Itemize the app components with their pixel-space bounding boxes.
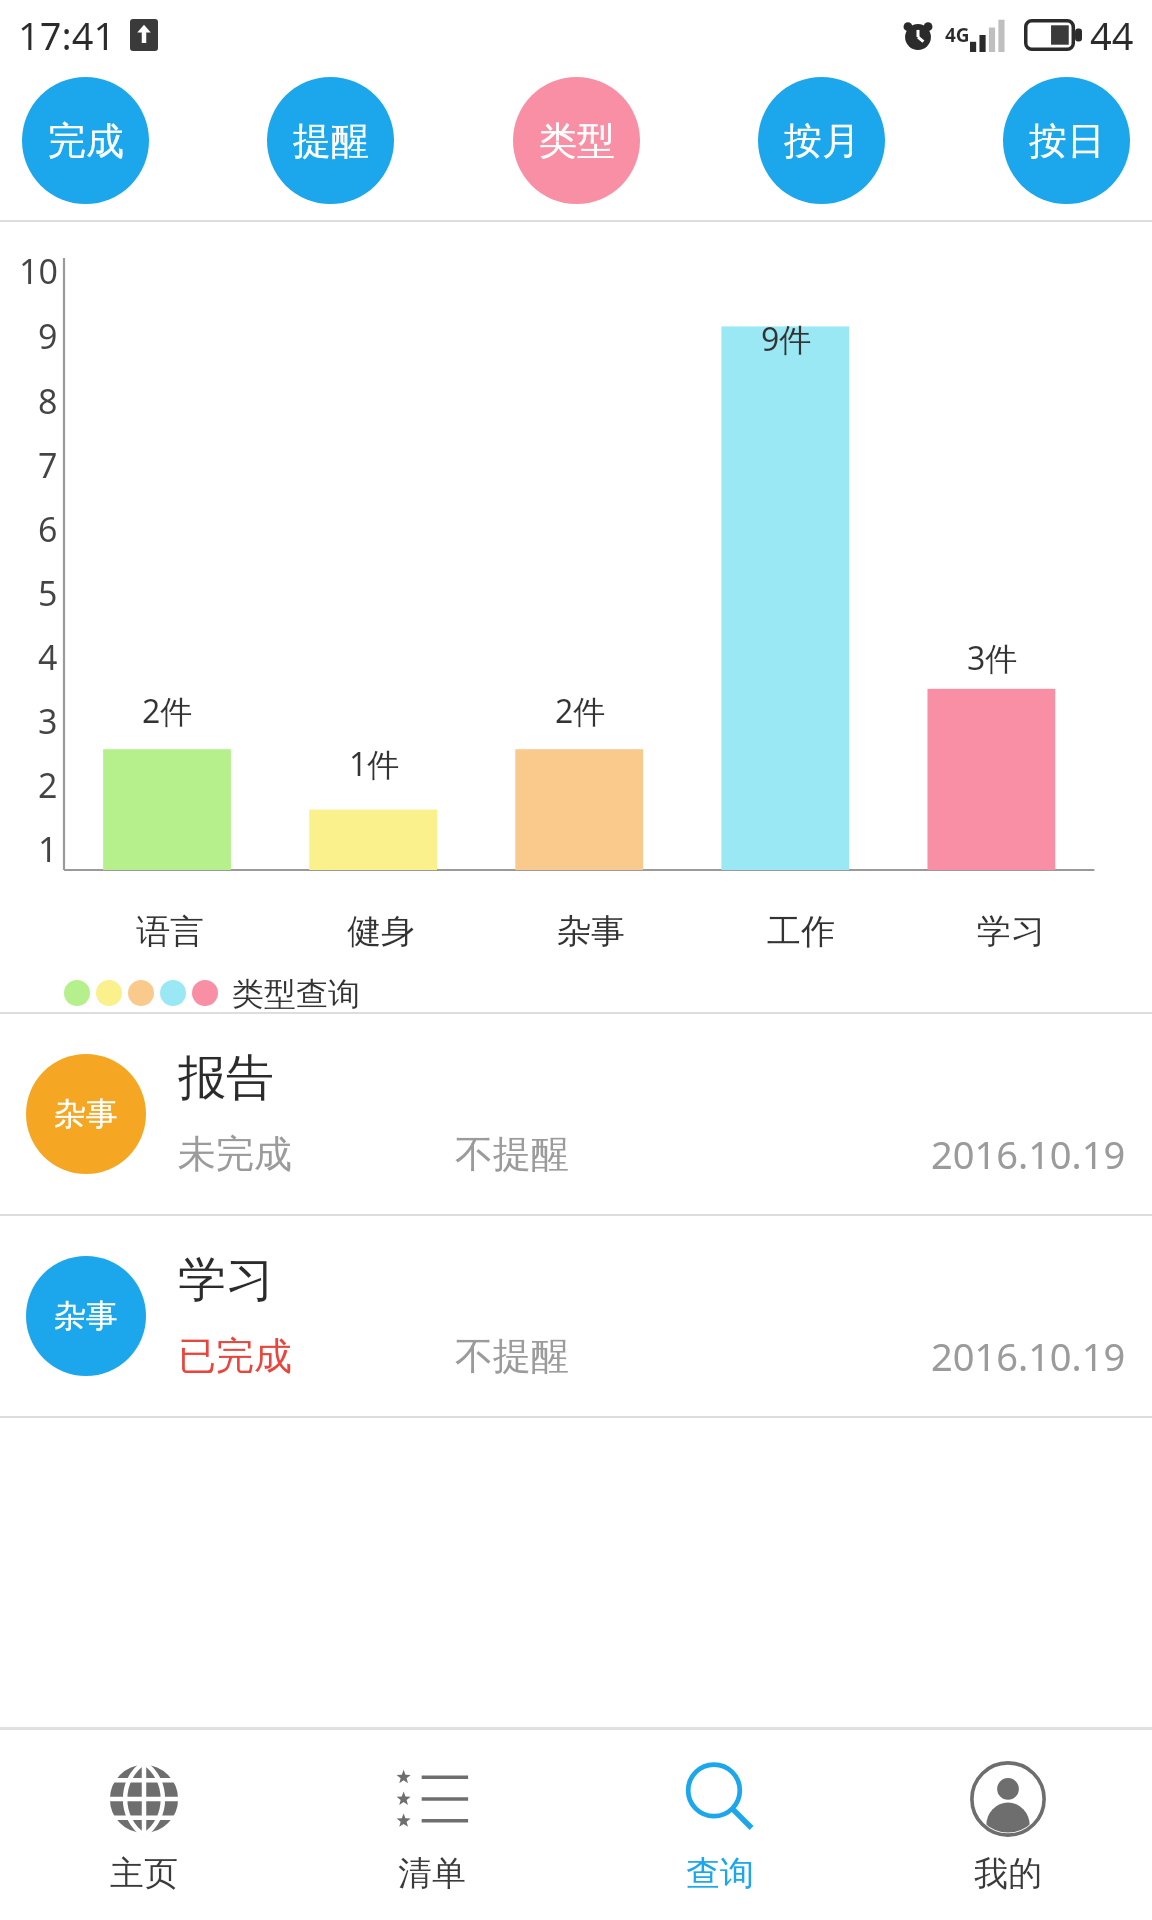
staticText: 工作	[767, 910, 835, 953]
staticText: 4	[38, 634, 58, 680]
button[interactable]: 按月	[758, 77, 885, 204]
staticText: 语言	[136, 910, 204, 953]
staticText: 1	[38, 826, 58, 872]
staticText: 已完成	[178, 1332, 292, 1380]
staticText: 7	[38, 442, 58, 488]
staticText: 查询	[686, 1852, 754, 1895]
staticText: 9件	[761, 317, 812, 361]
staticText: 主页	[110, 1852, 178, 1895]
staticText: 17:41	[18, 9, 116, 61]
staticText: 杂事	[557, 910, 625, 953]
staticText: 9	[38, 313, 58, 359]
staticText: 2件	[555, 689, 606, 733]
staticText: 6	[38, 506, 58, 552]
staticText: 报告	[178, 1048, 274, 1108]
staticText: 按日	[1029, 117, 1105, 165]
staticText: 杂事	[54, 1094, 118, 1134]
staticText: 健身	[347, 910, 415, 953]
staticText: 学习	[977, 910, 1045, 953]
staticText: 类型查询	[232, 974, 360, 1012]
staticText: 10	[19, 248, 58, 294]
button[interactable]: 查询	[576, 1730, 864, 1920]
staticText: 未完成	[178, 1130, 292, 1178]
staticText: 2016.10.19	[931, 1330, 1126, 1382]
staticText: 1件	[349, 742, 400, 786]
button[interactable]: 主页	[0, 1730, 288, 1920]
button[interactable]: 类型	[513, 77, 640, 204]
staticText: 我的	[974, 1852, 1042, 1895]
staticText: 类型	[539, 117, 615, 165]
staticText: 按月	[784, 117, 860, 165]
staticText: 44	[1090, 9, 1134, 61]
staticText: 2016.10.19	[931, 1128, 1126, 1180]
staticText: 学习	[178, 1250, 274, 1310]
button[interactable]: 提醒	[267, 77, 394, 204]
button[interactable]: 完成	[22, 77, 149, 204]
staticText: 清单	[398, 1852, 466, 1895]
button[interactable]: 杂事	[0, 1014, 1152, 1214]
staticText: 5	[38, 570, 58, 616]
button[interactable]: 按日	[1003, 77, 1130, 204]
staticText: 完成	[48, 117, 124, 165]
staticText: 2件	[142, 689, 193, 733]
staticText: 杂事	[54, 1296, 118, 1336]
button[interactable]: 我的	[864, 1730, 1152, 1920]
staticText: 4G	[945, 22, 970, 48]
staticText: 2	[38, 762, 58, 808]
staticText: 8	[38, 378, 58, 424]
staticText: 3件	[967, 636, 1018, 680]
button[interactable]: 杂事	[0, 1216, 1152, 1416]
button[interactable]: 清单	[288, 1730, 576, 1920]
staticText: 提醒	[293, 117, 369, 165]
staticText: 3	[38, 698, 58, 744]
staticText: 不提醒	[455, 1130, 569, 1178]
staticText: 不提醒	[455, 1332, 569, 1380]
